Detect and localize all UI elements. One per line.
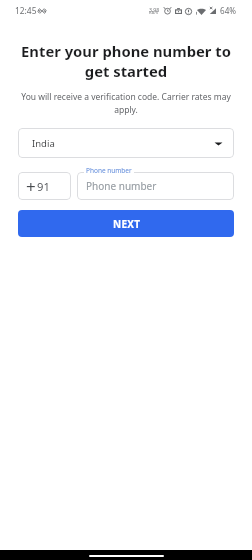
staticText: +	[26, 175, 36, 198]
button[interactable]: Phone number	[77, 172, 234, 200]
button[interactable]: +	[18, 172, 71, 200]
staticText: India	[32, 137, 55, 150]
staticText: KB/S	[149, 10, 159, 16]
staticText: 12:45	[15, 5, 37, 16]
staticText: 3.98	[149, 6, 160, 13]
staticText: 64%	[220, 5, 236, 16]
staticText: NEXT	[113, 217, 141, 231]
staticText: Phone number	[86, 179, 157, 193]
staticText: You will receive a verification code. Ca…	[10, 91, 242, 116]
button[interactable]: NEXT	[18, 210, 234, 237]
staticText: Phone number	[86, 166, 132, 175]
staticText: 91	[37, 179, 50, 194]
staticText: Enter your phone number to get started	[9, 41, 243, 81]
button[interactable]: India	[18, 128, 234, 158]
